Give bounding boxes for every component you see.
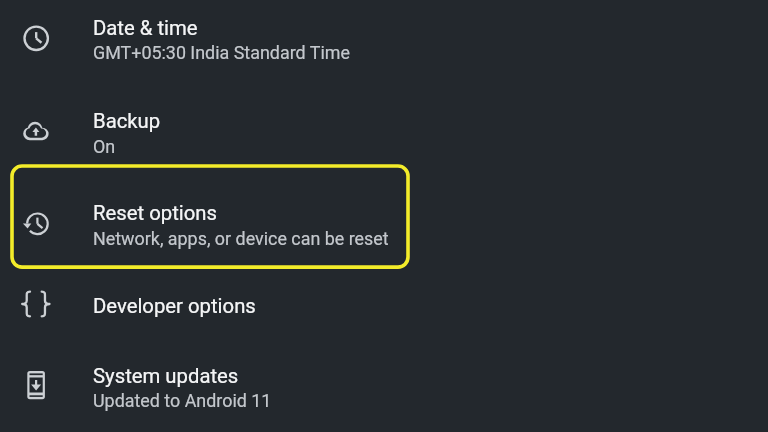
- staticText: Backup: [93, 109, 161, 133]
- other: Developer options: [0, 271, 768, 338]
- button[interactable]: Developer options: [0, 271, 768, 338]
- other: System updates: [0, 338, 768, 432]
- other: Date and time: [0, 0, 768, 84]
- button[interactable]: Date and time: [0, 0, 768, 84]
- staticText: Updated to Android 11: [93, 390, 272, 411]
- button[interactable]: Backup: [0, 84, 768, 178]
- staticText: GMT+05:30 India Standard Time: [93, 42, 350, 63]
- staticText: Network, apps, or device can be reset: [93, 228, 389, 249]
- staticText: Date & time: [93, 16, 198, 40]
- staticText: Developer options: [93, 294, 256, 318]
- button[interactable]: Reset options: [0, 178, 768, 271]
- other: Backup: [0, 84, 768, 178]
- button[interactable]: System updates: [0, 338, 768, 432]
- other: Reset options: [0, 178, 768, 271]
- staticText: Reset options: [93, 201, 217, 225]
- staticText: System updates: [93, 364, 239, 388]
- staticText: On: [93, 136, 116, 157]
